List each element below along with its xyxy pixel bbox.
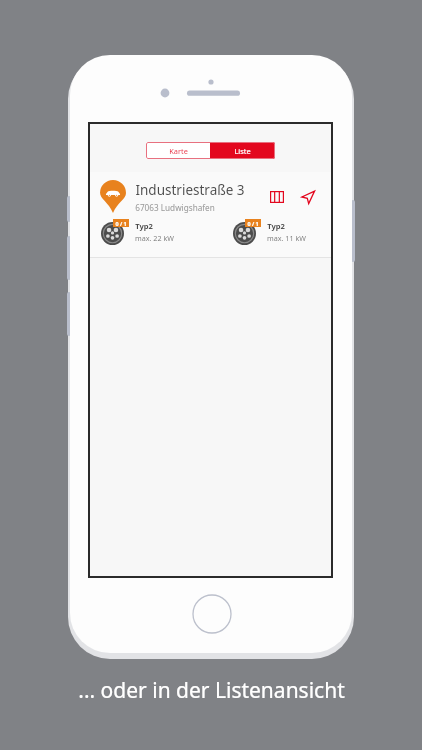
staticText: 0 / 1: [247, 220, 259, 227]
staticText: Industriestraße 3: [135, 181, 245, 199]
staticText: 67063 Ludwigshafen: [135, 202, 215, 213]
staticText: Typ2: [135, 221, 153, 231]
button[interactable]: Liste: [210, 142, 275, 159]
staticText: ... oder in der Listenansicht: [78, 676, 345, 705]
staticText: Liste: [234, 146, 251, 156]
staticText: Typ2: [267, 221, 285, 231]
staticText: Karte: [169, 146, 188, 156]
button[interactable]: Karte: [264, 184, 290, 210]
staticText: max. 11 kW: [267, 233, 306, 243]
staticText: max. 22 kW: [135, 233, 174, 243]
staticText: 0 / 1: [115, 220, 127, 227]
button[interactable]: Karte: [146, 142, 210, 159]
button[interactable]: Industriestraße 3: [88, 172, 333, 258]
button[interactable]: Navigation: [295, 184, 321, 210]
